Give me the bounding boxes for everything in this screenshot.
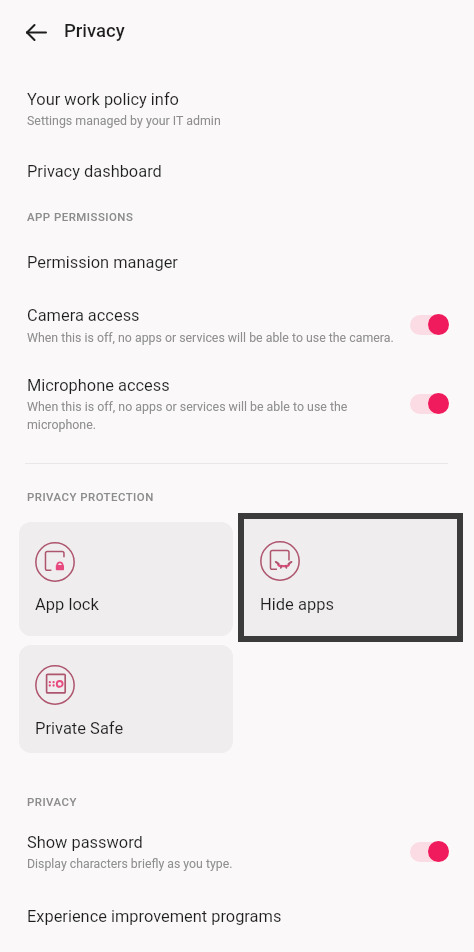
staticText: Privacy dashboard xyxy=(27,162,162,181)
staticText: Camera access xyxy=(27,306,140,325)
button[interactable]: Permission manager xyxy=(0,245,474,279)
staticText: Microphone access xyxy=(27,376,170,395)
button[interactable]: Microphone access xyxy=(0,368,474,402)
staticText: Permission manager xyxy=(27,253,178,272)
button[interactable]: Experience improvement programs xyxy=(0,899,474,933)
staticText: Private Safe xyxy=(35,719,124,738)
staticText: APP PERMISSIONS xyxy=(27,210,134,223)
staticText: When this is off, no apps or services wi… xyxy=(27,331,394,345)
button[interactable]: App lock xyxy=(19,522,233,636)
staticText: When this is off, no apps or services wi… xyxy=(27,399,354,432)
button[interactable]: Camera access xyxy=(0,298,474,332)
staticText: Display characters briefly as you type. xyxy=(27,857,233,871)
button[interactable]: Privacy dashboard xyxy=(0,154,474,188)
button[interactable]: Toggle xyxy=(410,393,450,414)
button[interactable]: Private Safe xyxy=(19,645,233,753)
staticText: Experience improvement programs xyxy=(27,907,282,926)
staticText: Hide apps xyxy=(260,595,334,614)
button[interactable]: Your work policy info xyxy=(0,82,474,116)
button[interactable]: Toggle xyxy=(410,314,450,335)
button[interactable]: Toggle xyxy=(410,841,450,862)
staticText: Your work policy info xyxy=(27,90,179,109)
staticText: PRIVACY xyxy=(27,795,77,808)
button[interactable]: Back xyxy=(14,10,58,54)
button[interactable]: Show password xyxy=(0,825,474,859)
staticText: Show password xyxy=(27,833,143,852)
staticText: Settings managed by your IT admin xyxy=(27,113,221,128)
button[interactable]: Hide apps xyxy=(244,519,457,636)
staticText: App lock xyxy=(35,595,99,614)
staticText: PRIVACY PROTECTION xyxy=(27,490,154,503)
staticText: Privacy xyxy=(64,20,125,42)
